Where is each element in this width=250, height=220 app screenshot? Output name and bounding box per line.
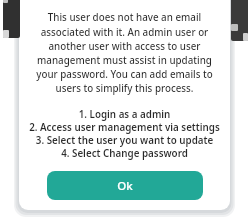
staticText: 3. Select the user you want to update <box>23 134 226 147</box>
staticText: 2. Access user management via settings <box>23 121 226 134</box>
other: decorative marks <box>0 0 250 220</box>
staticText: 4. Select Change password <box>23 147 226 160</box>
staticText: Ok <box>117 178 133 194</box>
staticText: 1. Login as a admin <box>23 108 226 121</box>
button[interactable]: Ok <box>47 171 203 200</box>
staticText: This user does not have an email associa… <box>32 11 217 95</box>
